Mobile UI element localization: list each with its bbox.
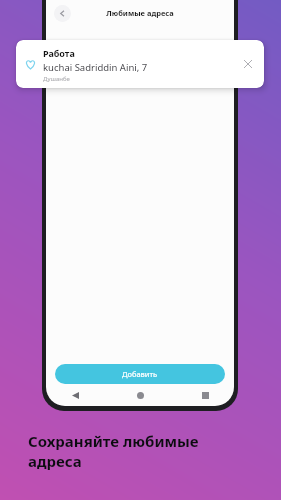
button[interactable]: Работа [16,40,264,88]
button[interactable]: Добавить [55,364,225,384]
staticText: Душанбе [43,75,70,83]
button[interactable]: Назад [54,5,71,22]
staticText: Сохраняйте любимые [28,431,199,451]
button[interactable]: Удалить [240,56,256,72]
button[interactable]: Назад [68,388,82,402]
button[interactable]: Домой [133,388,147,402]
staticText: Работа [43,47,75,59]
staticText: Любимые адреса [106,8,174,18]
button[interactable]: Последние приложения [198,388,212,402]
staticText: Добавить [122,369,158,379]
staticText: kuchai Sadriddin Aini, 7 [43,61,148,74]
staticText: адреса [28,451,82,471]
